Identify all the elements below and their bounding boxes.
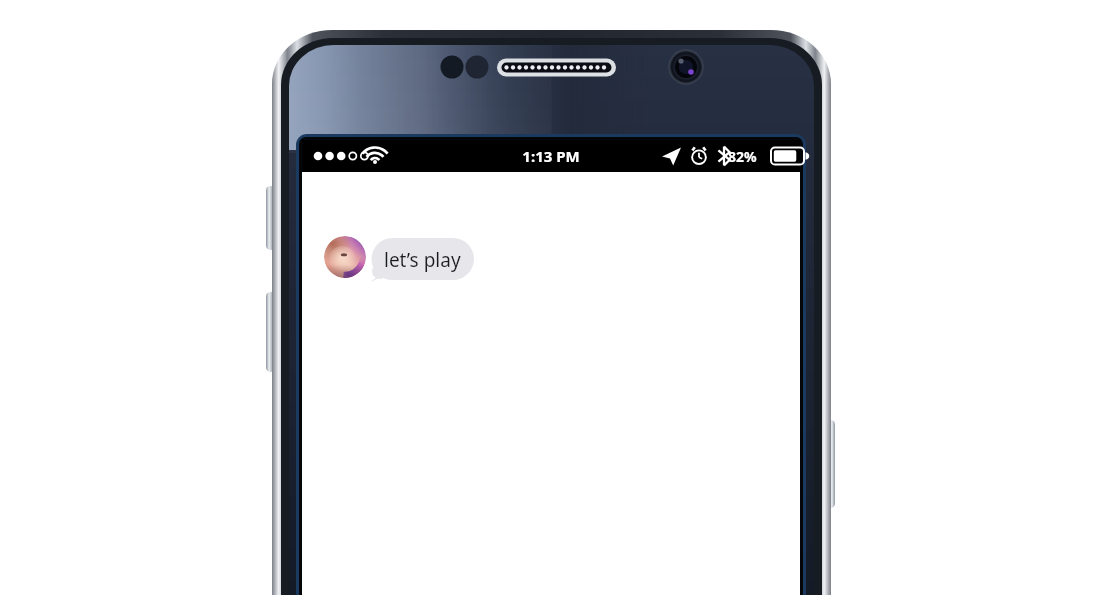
staticText: 82%	[728, 147, 757, 166]
button[interactable]: Contact avatar	[324, 236, 366, 278]
staticText: let’s play	[384, 247, 461, 273]
button[interactable]: let’s play	[369, 238, 474, 280]
staticText: 1:13 PM	[522, 146, 580, 166]
